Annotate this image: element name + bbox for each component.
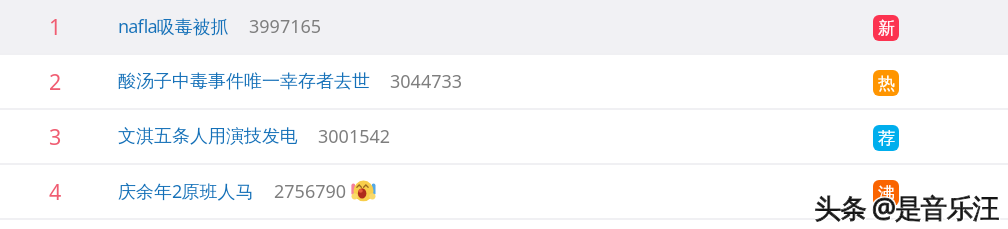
button[interactable]: 沸	[873, 180, 899, 206]
button[interactable]: 2	[0, 55, 1008, 108]
button[interactable]: 热	[873, 70, 899, 96]
staticText: 新	[878, 18, 895, 39]
staticText: 3	[49, 122, 61, 151]
staticText: 3001542	[318, 124, 391, 149]
staticText: 头条 @是音乐汪	[814, 189, 999, 226]
staticText: 酸汤子中毒事件唯一幸存者去世	[118, 70, 370, 93]
staticText: 1	[49, 12, 61, 41]
button[interactable]: 新	[873, 15, 899, 41]
button[interactable]: 4	[0, 165, 1008, 218]
staticText: 沸	[878, 183, 895, 204]
staticText: 热	[878, 73, 895, 94]
staticText: 庆余年2原班人马	[118, 179, 254, 204]
staticText: 2	[49, 67, 61, 96]
staticText: 头条 @是音乐汪	[814, 189, 999, 226]
staticText: 2756790	[274, 179, 347, 204]
staticText: 文淇五条人用演技发电	[118, 125, 298, 148]
other: crying face emoji	[351, 179, 376, 202]
staticText: nafla吸毒被抓	[118, 14, 229, 39]
staticText: 3044733	[390, 69, 463, 94]
staticText: 4	[49, 177, 61, 206]
staticText: 3997165	[249, 14, 322, 39]
button[interactable]: 1	[0, 0, 1008, 53]
button[interactable]: 荐	[873, 125, 899, 151]
button[interactable]: 3	[0, 110, 1008, 163]
staticText: 头条 @是音乐汪	[814, 189, 999, 226]
staticText: 荐	[878, 128, 895, 149]
